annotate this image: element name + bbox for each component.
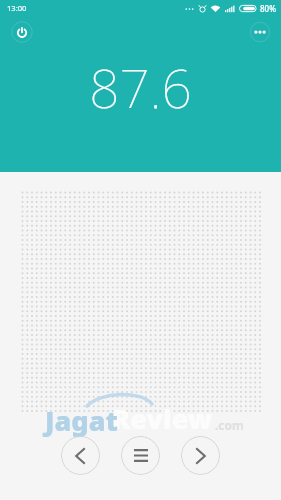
staticText: 13:00	[7, 3, 27, 13]
staticText: 87.6	[0, 51, 281, 123]
button[interactable]: More options	[246, 18, 274, 46]
staticText: Jagat	[45, 402, 118, 439]
staticText: 80%	[260, 3, 276, 14]
button[interactable]: Station list	[121, 436, 160, 475]
button[interactable]: Previous station	[61, 436, 100, 475]
staticText: Review	[112, 400, 213, 437]
button[interactable]: Power	[8, 18, 36, 46]
staticText: .com	[215, 417, 244, 433]
button[interactable]: Next station	[181, 436, 220, 475]
